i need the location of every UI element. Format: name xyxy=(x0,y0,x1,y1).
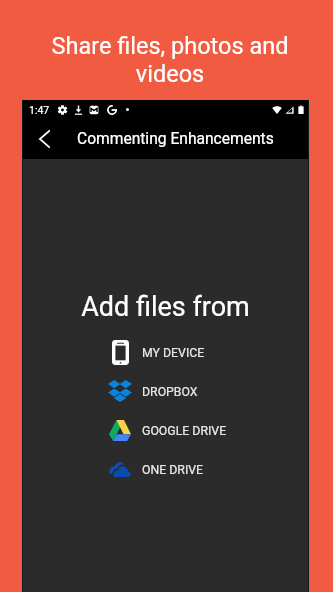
staticText: GOOGLE DRIVE xyxy=(142,424,227,438)
button[interactable]: ONE DRIVE xyxy=(23,449,308,488)
staticText: MY DEVICE xyxy=(142,346,205,360)
button[interactable]: Back xyxy=(28,123,60,155)
staticText: 1:47 xyxy=(29,104,50,116)
staticText: Share files, photos and videos xyxy=(44,32,296,88)
staticText: ONE DRIVE xyxy=(142,463,204,477)
staticText: Add files from xyxy=(23,291,308,323)
button[interactable]: DROPBOX xyxy=(23,371,308,410)
button[interactable]: MY DEVICE xyxy=(23,332,308,371)
button[interactable]: GOOGLE DRIVE xyxy=(23,410,308,449)
staticText: DROPBOX xyxy=(142,385,198,399)
staticText: Commenting Enhancements xyxy=(77,130,274,148)
